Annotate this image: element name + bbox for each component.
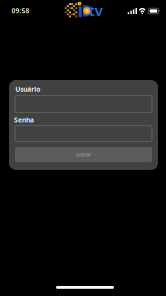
button[interactable]: Senha — [15, 126, 152, 142]
staticText: Senha — [14, 115, 34, 124]
staticText: Entrar — [76, 151, 91, 158]
button[interactable]: Entrar — [15, 147, 152, 162]
staticText: tv — [88, 0, 102, 20]
staticText: 09:58 — [11, 6, 29, 15]
staticText: Usuário — [15, 85, 40, 94]
